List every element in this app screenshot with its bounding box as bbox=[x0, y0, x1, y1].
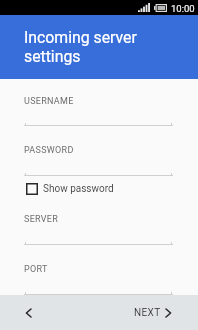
staticText: Incoming server settings bbox=[24, 28, 137, 66]
button[interactable]: Show password bbox=[24, 181, 173, 197]
staticText: 10:00 bbox=[171, 3, 195, 14]
staticText: USERNAME bbox=[24, 96, 74, 107]
button[interactable] bbox=[24, 142, 173, 177]
staticText: SERVER bbox=[24, 214, 59, 225]
staticText: Show password bbox=[43, 183, 114, 195]
button[interactable] bbox=[24, 93, 173, 127]
button[interactable] bbox=[24, 261, 173, 296]
button[interactable]: NEXT bbox=[116, 295, 198, 330]
button[interactable] bbox=[24, 211, 173, 246]
staticText: NEXT bbox=[134, 307, 161, 319]
staticText: PASSWORD bbox=[24, 145, 74, 156]
button[interactable]: Back bbox=[0, 295, 56, 330]
staticText: PORT bbox=[24, 264, 48, 275]
